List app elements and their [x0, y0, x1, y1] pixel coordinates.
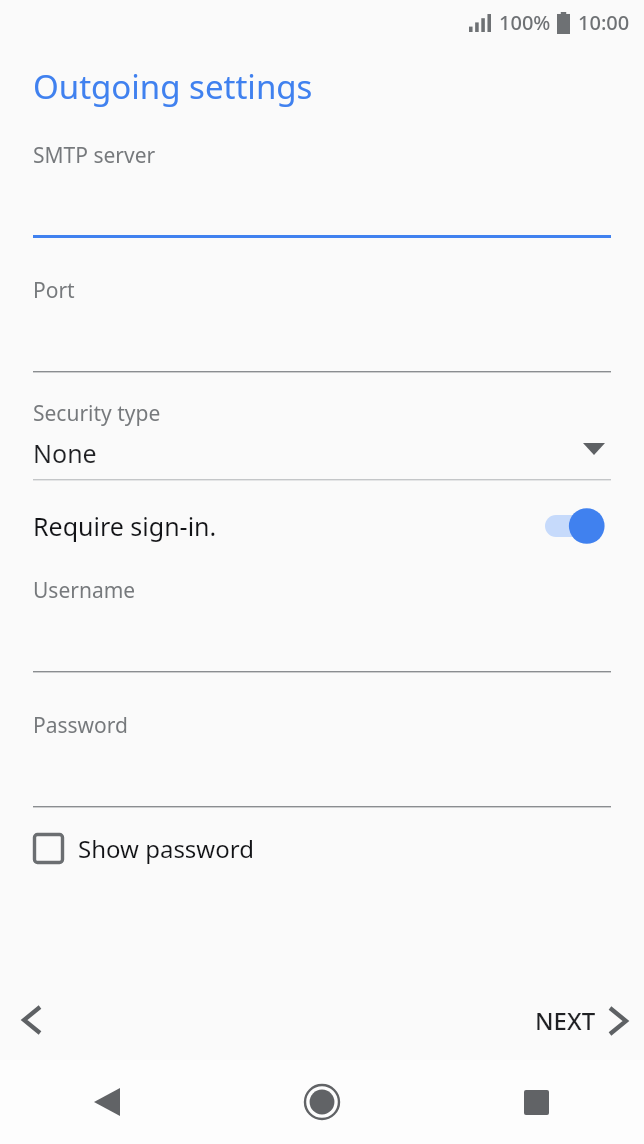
- button[interactable]: Port: [33, 276, 611, 373]
- staticText: Security type: [33, 399, 161, 428]
- staticText: NEXT: [535, 1004, 596, 1037]
- button[interactable]: Require sign-in.: [33, 498, 611, 554]
- button[interactable]: Back: [0, 1060, 214, 1144]
- staticText: 100%: [499, 9, 551, 36]
- staticText: None: [33, 436, 97, 470]
- staticText: Username: [33, 576, 136, 605]
- staticText: Require sign-in.: [33, 509, 217, 543]
- button[interactable]: SMTP server: [33, 141, 611, 238]
- staticText: Outgoing settings: [33, 64, 313, 109]
- staticText: SMTP server: [33, 141, 156, 170]
- button[interactable]: Security type: [33, 399, 611, 481]
- button[interactable]: NEXT: [529, 994, 632, 1047]
- staticText: Port: [33, 276, 75, 305]
- staticText: Password: [33, 711, 128, 740]
- button[interactable]: Username: [33, 576, 611, 673]
- button[interactable]: Back: [8, 996, 56, 1044]
- staticText: Show password: [78, 832, 254, 865]
- staticText: 10:00: [578, 9, 630, 36]
- button[interactable]: Recent apps: [429, 1060, 644, 1144]
- button[interactable]: Show password: [33, 824, 254, 872]
- button[interactable]: Home: [214, 1060, 429, 1144]
- button[interactable]: Password: [33, 711, 611, 808]
- other: Require sign-in toggle: [545, 507, 611, 545]
